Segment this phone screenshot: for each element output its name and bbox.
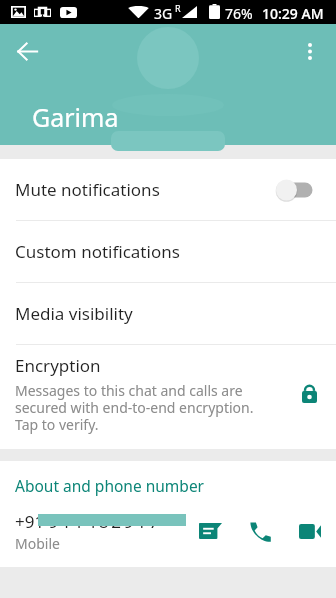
button[interactable]: More options — [289, 30, 331, 72]
staticText: About and phone number — [15, 475, 205, 496]
staticText: 76% — [225, 4, 253, 23]
button[interactable]: Video call — [290, 511, 330, 551]
staticText: Garima — [32, 100, 119, 134]
button[interactable]: Media visibility — [0, 283, 336, 344]
staticText: Encryption — [15, 354, 101, 377]
button[interactable]: Mute notifications toggle — [268, 170, 320, 210]
button[interactable]: Custom notifications — [0, 221, 336, 282]
staticText: Mobile — [15, 534, 60, 553]
button[interactable]: Encryption — [0, 345, 336, 449]
staticText: Mute notifications — [15, 178, 160, 201]
button[interactable]: Message — [190, 511, 230, 551]
staticText: Custom notifications — [15, 240, 180, 263]
staticText: Media visibility — [15, 302, 133, 325]
staticText: +91 9 1 1 4 8 2 9 1 7 — [15, 510, 159, 533]
staticText: R — [175, 2, 181, 14]
staticText: Messages to this chat and calls are secu… — [15, 381, 254, 434]
button[interactable]: Back — [6, 30, 48, 72]
staticText: 3G — [154, 4, 173, 23]
button[interactable]: Call — [240, 512, 280, 552]
staticText: 10:29 AM — [262, 4, 324, 23]
button[interactable]: Mute notifications — [0, 159, 336, 220]
